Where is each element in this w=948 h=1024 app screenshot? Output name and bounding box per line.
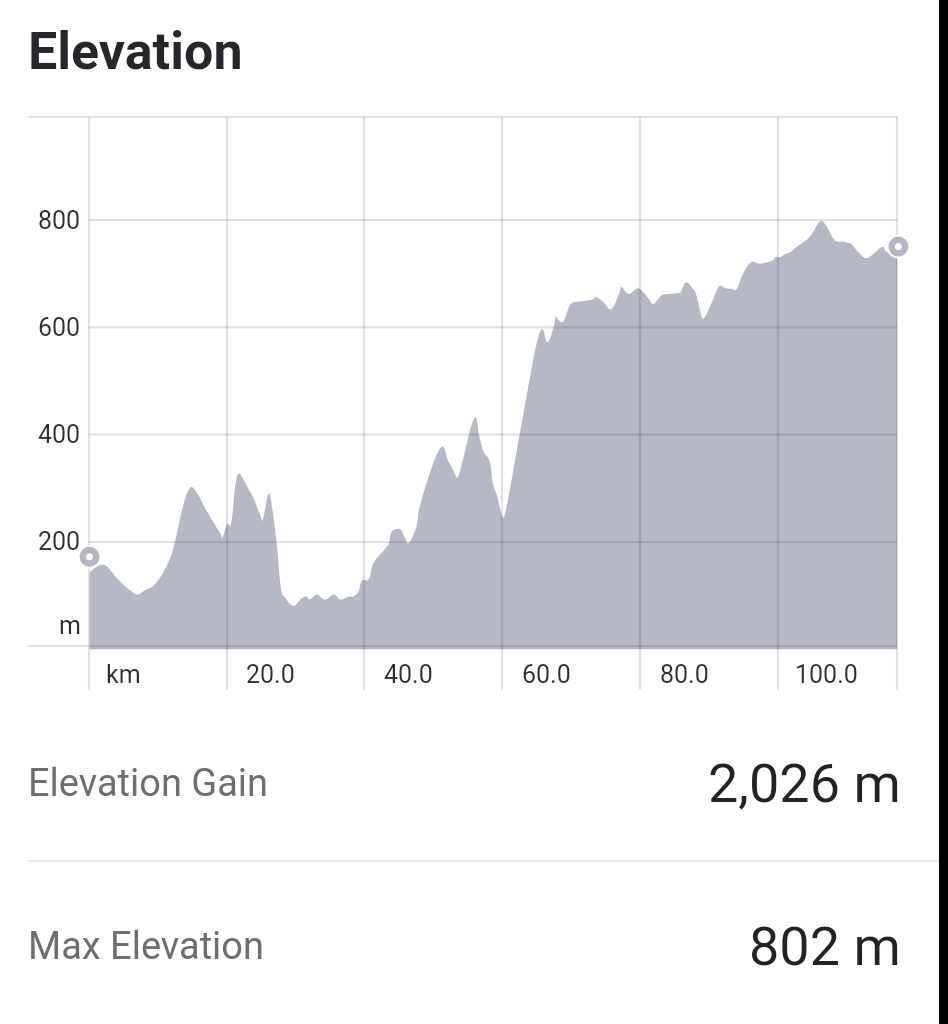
staticText: 200 (38, 527, 81, 556)
staticText: Max Elevation (28, 924, 264, 969)
staticText: 40.0 (384, 660, 433, 689)
button[interactable]: Elevation Gain (0, 706, 939, 860)
staticText: m (59, 611, 81, 640)
staticText: 802 m (749, 915, 901, 978)
staticText: 2,026 m (708, 752, 901, 815)
staticText: 800 (38, 206, 81, 235)
button[interactable]: Elevation profile chart (0, 100, 948, 700)
staticText: km (106, 660, 141, 689)
staticText: Elevation (28, 21, 243, 82)
staticText: Elevation Gain (28, 761, 269, 806)
button[interactable]: Max Elevation (0, 873, 939, 1019)
staticText: 20.0 (246, 660, 295, 689)
staticText: 60.0 (522, 660, 571, 689)
staticText: 600 (38, 313, 81, 342)
staticText: 400 (38, 420, 81, 449)
staticText: 100.0 (795, 660, 858, 689)
staticText: 80.0 (660, 660, 709, 689)
